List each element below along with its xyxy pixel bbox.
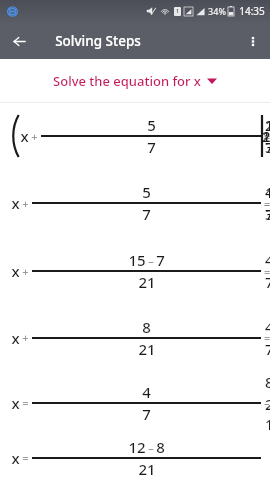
- staticText: 34%: [208, 5, 226, 17]
- staticText: 21: [138, 459, 156, 479]
- staticText: Solving Steps: [55, 32, 141, 50]
- button[interactable]: x: [0, 169, 270, 237]
- staticText: x: [11, 393, 20, 413]
- staticText: 14:35: [239, 4, 265, 18]
- button[interactable]: More options: [239, 27, 267, 55]
- staticText: 12: [128, 437, 146, 457]
- staticText: 8: [142, 317, 151, 337]
- staticText: +: [31, 129, 38, 144]
- staticText: +: [22, 196, 29, 211]
- button[interactable]: x: [0, 237, 270, 305]
- staticText: =: [22, 450, 29, 465]
- staticText: 7: [147, 137, 156, 157]
- staticText: 21: [138, 272, 156, 292]
- staticText: 1: [176, 8, 179, 15]
- staticText: 21: [138, 339, 156, 359]
- staticText: =: [22, 395, 29, 410]
- staticText: Solve the equation for x: [53, 72, 201, 90]
- staticText: 7: [142, 204, 151, 224]
- staticText: 15: [128, 250, 146, 270]
- staticText: 5: [147, 115, 156, 135]
- button[interactable]: x: [0, 370, 270, 435]
- staticText: x: [11, 448, 20, 468]
- staticText: x: [11, 193, 20, 213]
- staticText: –: [148, 253, 154, 268]
- button[interactable]: Back: [4, 26, 34, 56]
- staticText: x: [11, 261, 20, 281]
- button[interactable]: Solve the equation for x: [0, 59, 270, 102]
- staticText: 5: [142, 182, 151, 202]
- staticText: –: [148, 440, 154, 455]
- staticText: +: [22, 330, 29, 345]
- staticText: 8: [156, 437, 165, 457]
- button[interactable]: x: [0, 435, 270, 480]
- staticText: +: [22, 264, 29, 279]
- button[interactable]: x: [0, 305, 270, 370]
- button[interactable]: x: [0, 103, 270, 169]
- staticText: 7: [156, 250, 165, 270]
- staticText: 4: [142, 382, 151, 402]
- staticText: 7: [142, 404, 151, 424]
- staticText: x: [11, 328, 20, 348]
- staticText: x: [20, 126, 29, 146]
